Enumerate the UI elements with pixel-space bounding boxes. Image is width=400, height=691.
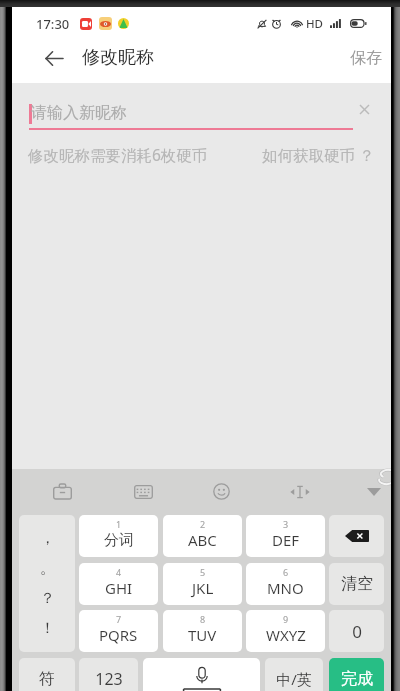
staticText: 8 xyxy=(200,613,206,625)
staticText: TUV xyxy=(188,625,217,645)
button[interactable]: Keyboard layout xyxy=(124,469,162,514)
staticText: 7 xyxy=(116,613,122,625)
staticText: 保存 xyxy=(350,48,382,68)
staticText: 修改昵称 xyxy=(82,46,154,69)
staticText: 4 xyxy=(116,566,122,578)
button[interactable]: 5 JKL xyxy=(163,563,242,605)
staticText: DEF xyxy=(272,530,300,550)
button[interactable]: 完成 xyxy=(329,658,384,691)
staticText: ABC xyxy=(188,530,217,550)
staticText: 符 xyxy=(39,669,55,689)
button[interactable]: Hide keyboard xyxy=(355,469,393,514)
staticText: 5 xyxy=(200,566,206,578)
staticText: GHI xyxy=(105,578,133,598)
button[interactable]: 中/英 xyxy=(265,658,323,691)
button[interactable]: 如何获取硬币 ？ xyxy=(256,138,381,171)
staticText: MNO xyxy=(267,578,304,598)
staticText: 修改昵称需要消耗6枚硬币 xyxy=(28,144,208,165)
staticText: 完成 xyxy=(341,669,373,689)
button[interactable]: 清空 xyxy=(329,563,384,605)
button[interactable]: Space xyxy=(143,658,260,691)
staticText: ， xyxy=(40,529,55,548)
staticText: 1 xyxy=(116,518,122,530)
staticText: 2 xyxy=(200,518,206,530)
button[interactable]: 1 分词 xyxy=(79,515,158,557)
button[interactable]: 2 ABC xyxy=(163,515,242,557)
button[interactable]: 9 WXYZ xyxy=(246,610,325,652)
staticText: 中/英 xyxy=(276,669,312,689)
staticText: HD xyxy=(306,16,324,32)
button[interactable]: Move cursor xyxy=(281,469,319,514)
staticText: PQRS xyxy=(99,625,138,645)
staticText: JKL xyxy=(192,578,214,598)
staticText: 如何获取硬币 ？ xyxy=(262,144,375,165)
staticText: 3 xyxy=(283,518,289,530)
button[interactable]: 6 MNO xyxy=(246,563,325,605)
button[interactable]: 8 TUV xyxy=(163,610,242,652)
staticText: 请输入新昵称 xyxy=(31,103,127,123)
button[interactable]: 7 PQRS xyxy=(79,610,158,652)
staticText: 17:30 xyxy=(36,15,70,33)
button[interactable]: 123 xyxy=(79,658,138,691)
staticText: ？ xyxy=(40,589,55,608)
button[interactable]: 0 xyxy=(329,610,384,652)
button[interactable]: 保存 xyxy=(332,35,391,80)
button[interactable]: 4 GHI xyxy=(79,563,158,605)
staticText: 9 xyxy=(283,613,289,625)
staticText: 分词 xyxy=(104,531,134,550)
staticText: ！ xyxy=(40,619,55,638)
button[interactable]: Back xyxy=(33,37,75,79)
button[interactable]: 3 DEF xyxy=(246,515,325,557)
button[interactable]: Emoji xyxy=(202,469,240,514)
button[interactable]: 符 xyxy=(19,658,75,691)
button[interactable]: ，。？！ xyxy=(19,515,75,652)
button[interactable]: Clear text xyxy=(351,96,377,122)
staticText: 。 xyxy=(40,559,55,578)
button[interactable]: Toolbox xyxy=(43,469,81,514)
staticText: 123 xyxy=(95,668,123,690)
staticText: 0 xyxy=(352,620,362,643)
staticText: 清空 xyxy=(341,574,373,594)
button[interactable]: Backspace xyxy=(329,515,384,557)
staticText: 6 xyxy=(283,566,289,578)
staticText: WXYZ xyxy=(266,625,306,645)
